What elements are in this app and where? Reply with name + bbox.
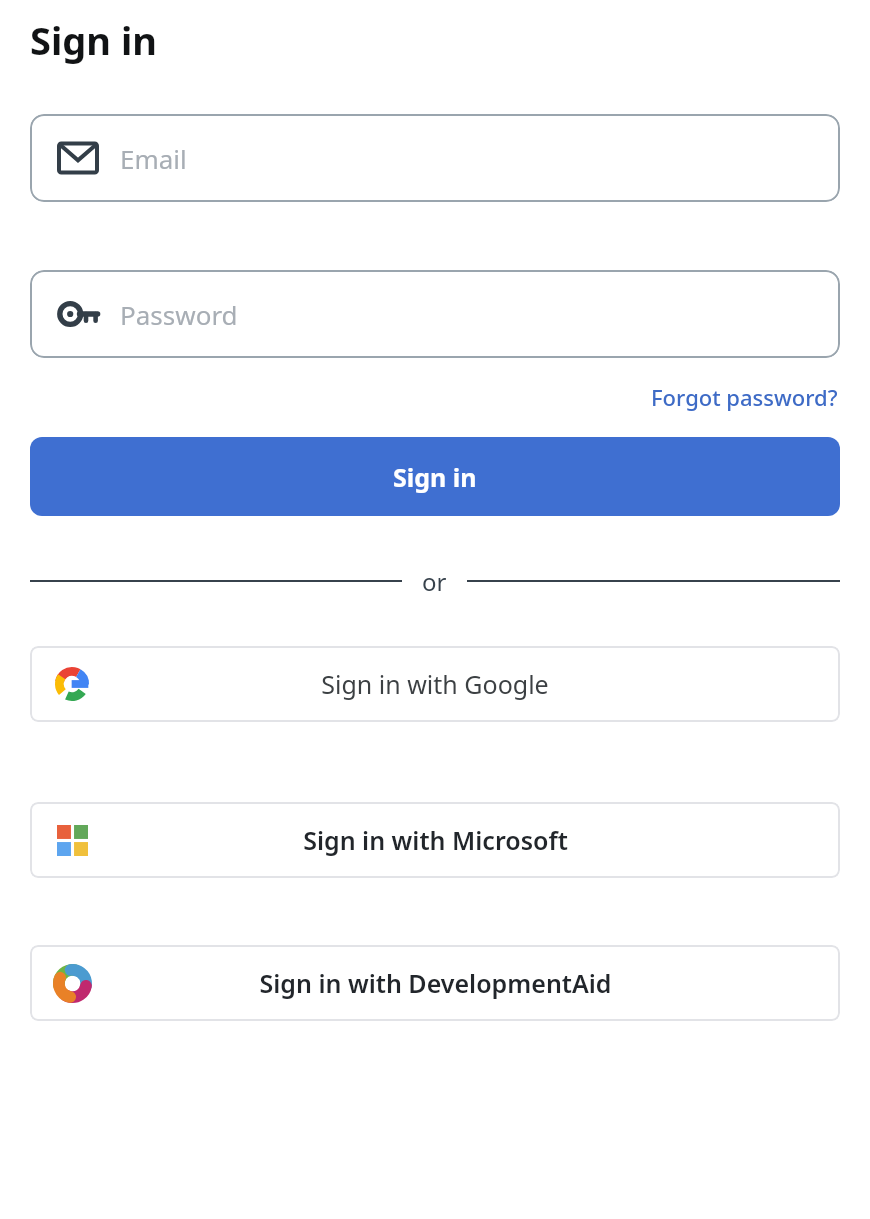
other: Email — [59, 139, 97, 177]
staticText: Password — [120, 297, 238, 332]
staticText: Sign in — [393, 460, 477, 494]
other: Microsoft — [57, 825, 88, 856]
other: DevelopmentAid — [53, 964, 92, 1003]
button[interactable]: Email — [30, 114, 840, 202]
other: Password — [58, 294, 98, 334]
staticText: or — [422, 565, 447, 598]
other: Google — [55, 667, 89, 701]
staticText: Sign in — [30, 14, 157, 66]
button[interactable]: Google — [30, 646, 840, 722]
button[interactable]: Password — [30, 270, 840, 358]
button[interactable]: DevelopmentAid — [30, 945, 840, 1021]
button[interactable]: Forgot password? — [649, 378, 840, 416]
staticText: Forgot password? — [651, 382, 838, 412]
button[interactable]: Microsoft — [30, 802, 840, 878]
button[interactable]: Sign in — [30, 437, 840, 516]
staticText: Sign in with Google — [321, 667, 549, 701]
staticText: Sign in with Microsoft — [303, 823, 568, 857]
staticText: Email — [120, 141, 187, 176]
staticText: Sign in with DevelopmentAid — [259, 966, 612, 1000]
